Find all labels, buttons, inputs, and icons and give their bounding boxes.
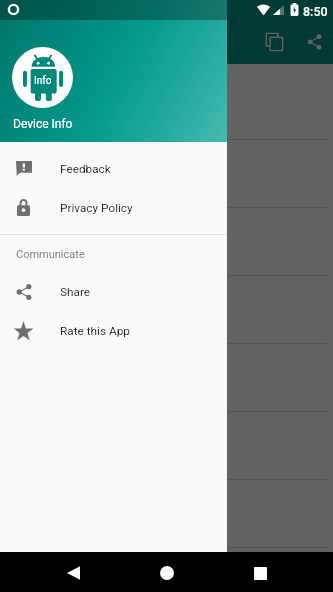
button[interactable] — [0, 480, 333, 548]
button[interactable]: Privacy Policy — [0, 188, 227, 227]
button[interactable]: Rate this App — [0, 311, 227, 350]
staticText: Share — [60, 285, 91, 299]
staticText: Info — [34, 75, 52, 87]
button[interactable] — [0, 140, 333, 208]
button[interactable]: Share — [292, 20, 333, 64]
staticText: Device Info — [13, 117, 73, 131]
staticText: Privacy Policy — [60, 201, 133, 215]
button[interactable] — [0, 344, 333, 412]
button[interactable] — [0, 276, 333, 344]
button[interactable] — [0, 208, 333, 276]
button[interactable]: Copy — [252, 20, 296, 64]
staticText: Communicate — [16, 248, 85, 261]
staticText: Feedback — [60, 162, 111, 176]
staticText: Rate this App — [60, 324, 130, 338]
button[interactable]: Home — [146, 552, 187, 592]
button[interactable]: Share — [0, 272, 227, 311]
button[interactable] — [0, 72, 333, 140]
button[interactable]: Feedback — [0, 149, 227, 188]
staticText: 8:50 — [303, 4, 328, 19]
button[interactable]: Back — [53, 552, 94, 592]
button[interactable] — [0, 412, 333, 480]
button[interactable] — [0, 548, 333, 592]
button[interactable]: Recent apps — [240, 552, 281, 592]
